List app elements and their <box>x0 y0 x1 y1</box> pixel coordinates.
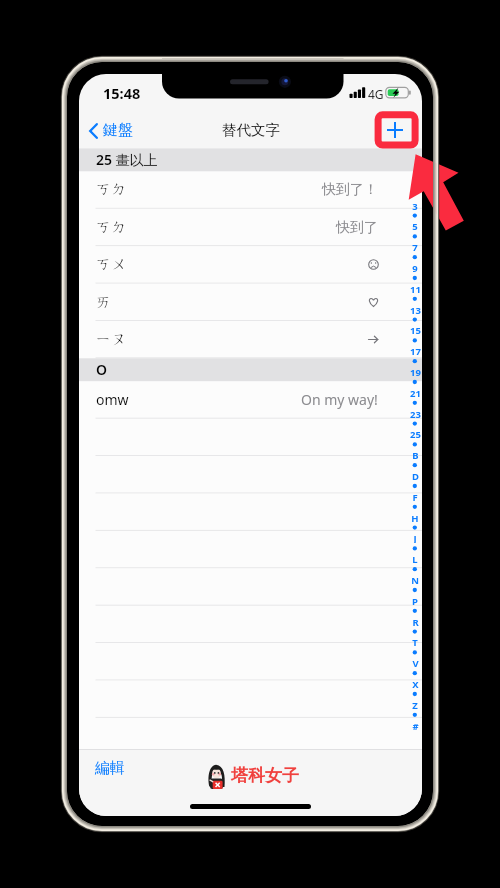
staticText: D <box>412 470 419 481</box>
staticText: B <box>412 449 419 460</box>
staticText: ㄎㄉ <box>96 218 127 237</box>
button[interactable] <box>79 531 422 568</box>
staticText: 9 <box>412 262 418 273</box>
staticText: 快到了！ <box>322 181 378 199</box>
staticText: 23 <box>410 408 421 419</box>
staticText: 快到了 <box>336 219 378 237</box>
button[interactable] <box>79 456 422 493</box>
staticText: O <box>96 360 108 379</box>
staticText: omw <box>96 390 129 409</box>
staticText: P <box>412 595 418 606</box>
staticText: 11 <box>410 283 421 294</box>
staticText: 7 <box>412 241 418 252</box>
staticText: ㄎㄨ <box>96 255 127 274</box>
staticText: 17 <box>410 345 421 356</box>
button[interactable]: ㄎㄉ <box>79 209 422 246</box>
button[interactable]: ㄎㄨ <box>79 246 422 283</box>
staticText: On my way! <box>301 390 378 409</box>
staticText: 5 <box>412 220 418 231</box>
staticText: N <box>411 574 419 585</box>
button[interactable]: ㄧㄡ <box>79 321 422 358</box>
staticText: R <box>412 616 419 627</box>
staticText: 15 <box>410 324 421 335</box>
button[interactable]: Section index <box>407 198 422 732</box>
staticText: H <box>411 512 419 523</box>
staticText: J <box>413 532 417 543</box>
staticText: 15:48 <box>103 83 141 103</box>
button[interactable]: Add <box>374 113 416 147</box>
button[interactable] <box>79 493 422 530</box>
button[interactable] <box>79 568 422 605</box>
staticText: Z <box>412 699 418 710</box>
button[interactable]: ㄎㄉ <box>79 171 422 208</box>
button[interactable]: 鍵盤 <box>79 117 141 144</box>
staticText: L <box>412 553 418 564</box>
button[interactable]: 編輯 <box>87 754 133 783</box>
button[interactable] <box>79 718 422 755</box>
staticText: 21 <box>410 387 421 398</box>
button[interactable] <box>79 606 422 643</box>
staticText: ㄧㄡ <box>96 330 127 349</box>
staticText: T <box>412 636 418 647</box>
staticText: F <box>412 491 418 502</box>
staticText: 替代文字 <box>222 121 280 139</box>
staticText: X <box>412 678 419 689</box>
button[interactable] <box>79 680 422 717</box>
button[interactable] <box>79 643 422 680</box>
staticText: 25 畫以上 <box>96 150 158 169</box>
button[interactable]: ㄞ <box>79 284 422 321</box>
staticText: 編輯 <box>95 759 125 778</box>
staticText: 13 <box>410 304 421 315</box>
staticText: ㄎㄉ <box>96 180 127 199</box>
staticText: 3 <box>412 200 418 211</box>
staticText: 鍵盤 <box>103 121 133 140</box>
staticText: # <box>412 720 419 731</box>
staticText: V <box>412 657 419 668</box>
staticText: 4G <box>368 86 384 102</box>
staticText: 19 <box>410 366 421 377</box>
button[interactable]: omw <box>79 381 422 418</box>
staticText: ㄞ <box>96 293 112 312</box>
staticText: 塔科女子 <box>231 765 299 786</box>
staticText: 25 <box>410 428 421 439</box>
button[interactable] <box>79 419 422 456</box>
